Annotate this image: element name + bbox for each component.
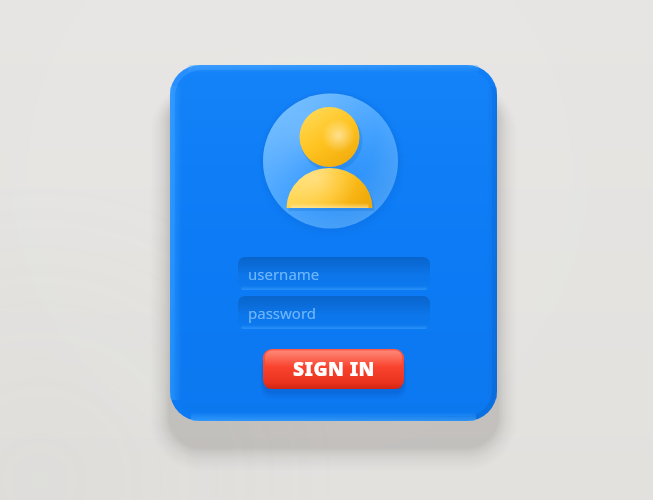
button[interactable]: username xyxy=(238,257,430,290)
button[interactable]: Profile avatar xyxy=(263,93,398,228)
button[interactable]: SIGN IN xyxy=(263,349,404,389)
staticText: username xyxy=(248,264,320,284)
staticText: password xyxy=(248,303,316,323)
staticText: SIGN IN xyxy=(293,356,375,382)
button[interactable]: password xyxy=(238,296,430,329)
